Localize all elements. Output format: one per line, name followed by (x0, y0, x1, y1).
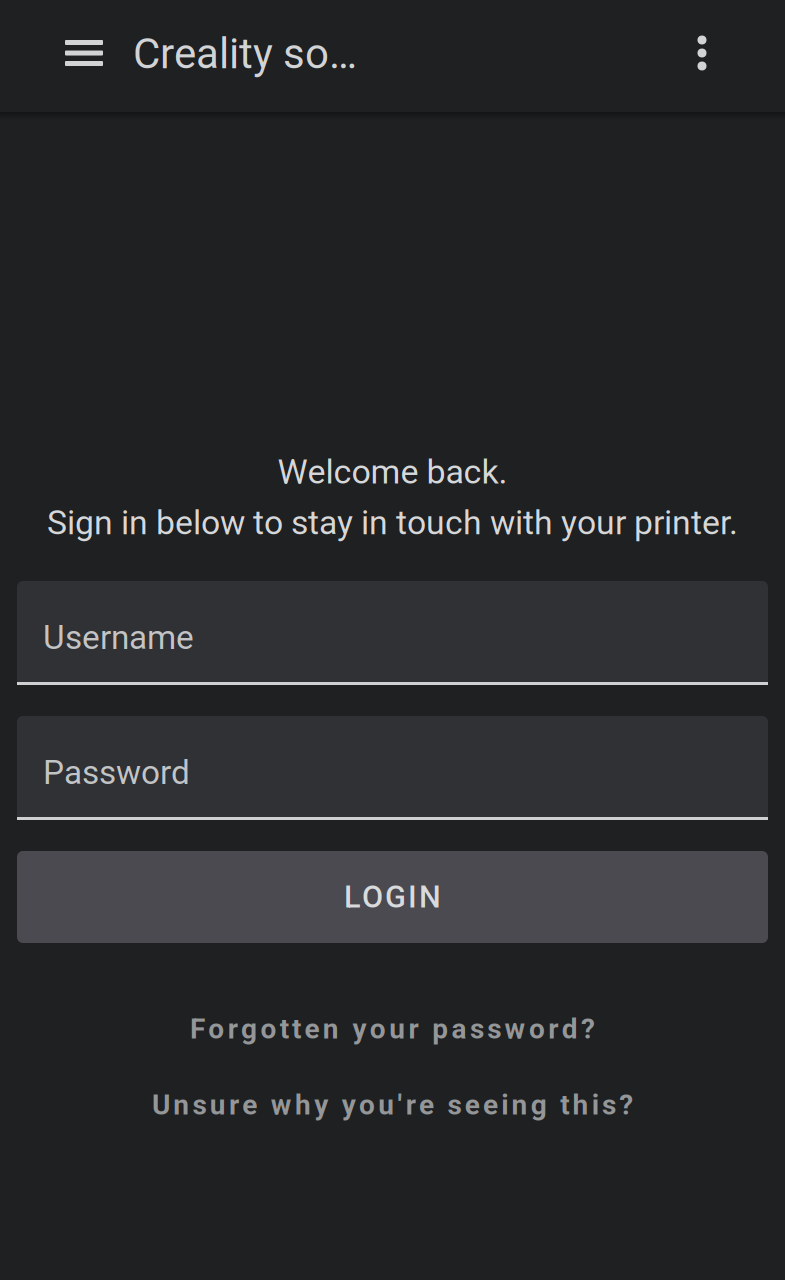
button[interactable]: Unsure why you're seeing this? (17, 1079, 768, 1131)
staticText: Username (43, 618, 194, 657)
staticText: LOGIN (344, 879, 441, 915)
staticText: Welcome back. (277, 452, 507, 492)
staticText: Unsure why you're seeing this? (152, 1089, 633, 1121)
button[interactable]: Open navigation menu (40, 0, 128, 112)
staticText: Creality so… (133, 29, 357, 79)
staticText: Password (43, 753, 190, 792)
staticText: Sign in below to stay in touch with your… (47, 503, 738, 542)
button[interactable]: Forgotten your password? (17, 1003, 768, 1055)
staticText: Forgotten your password? (190, 1013, 595, 1045)
button[interactable]: Creality so… (88, 0, 357, 112)
button[interactable]: More options (663, 0, 741, 112)
button[interactable]: LOGIN (17, 851, 768, 943)
